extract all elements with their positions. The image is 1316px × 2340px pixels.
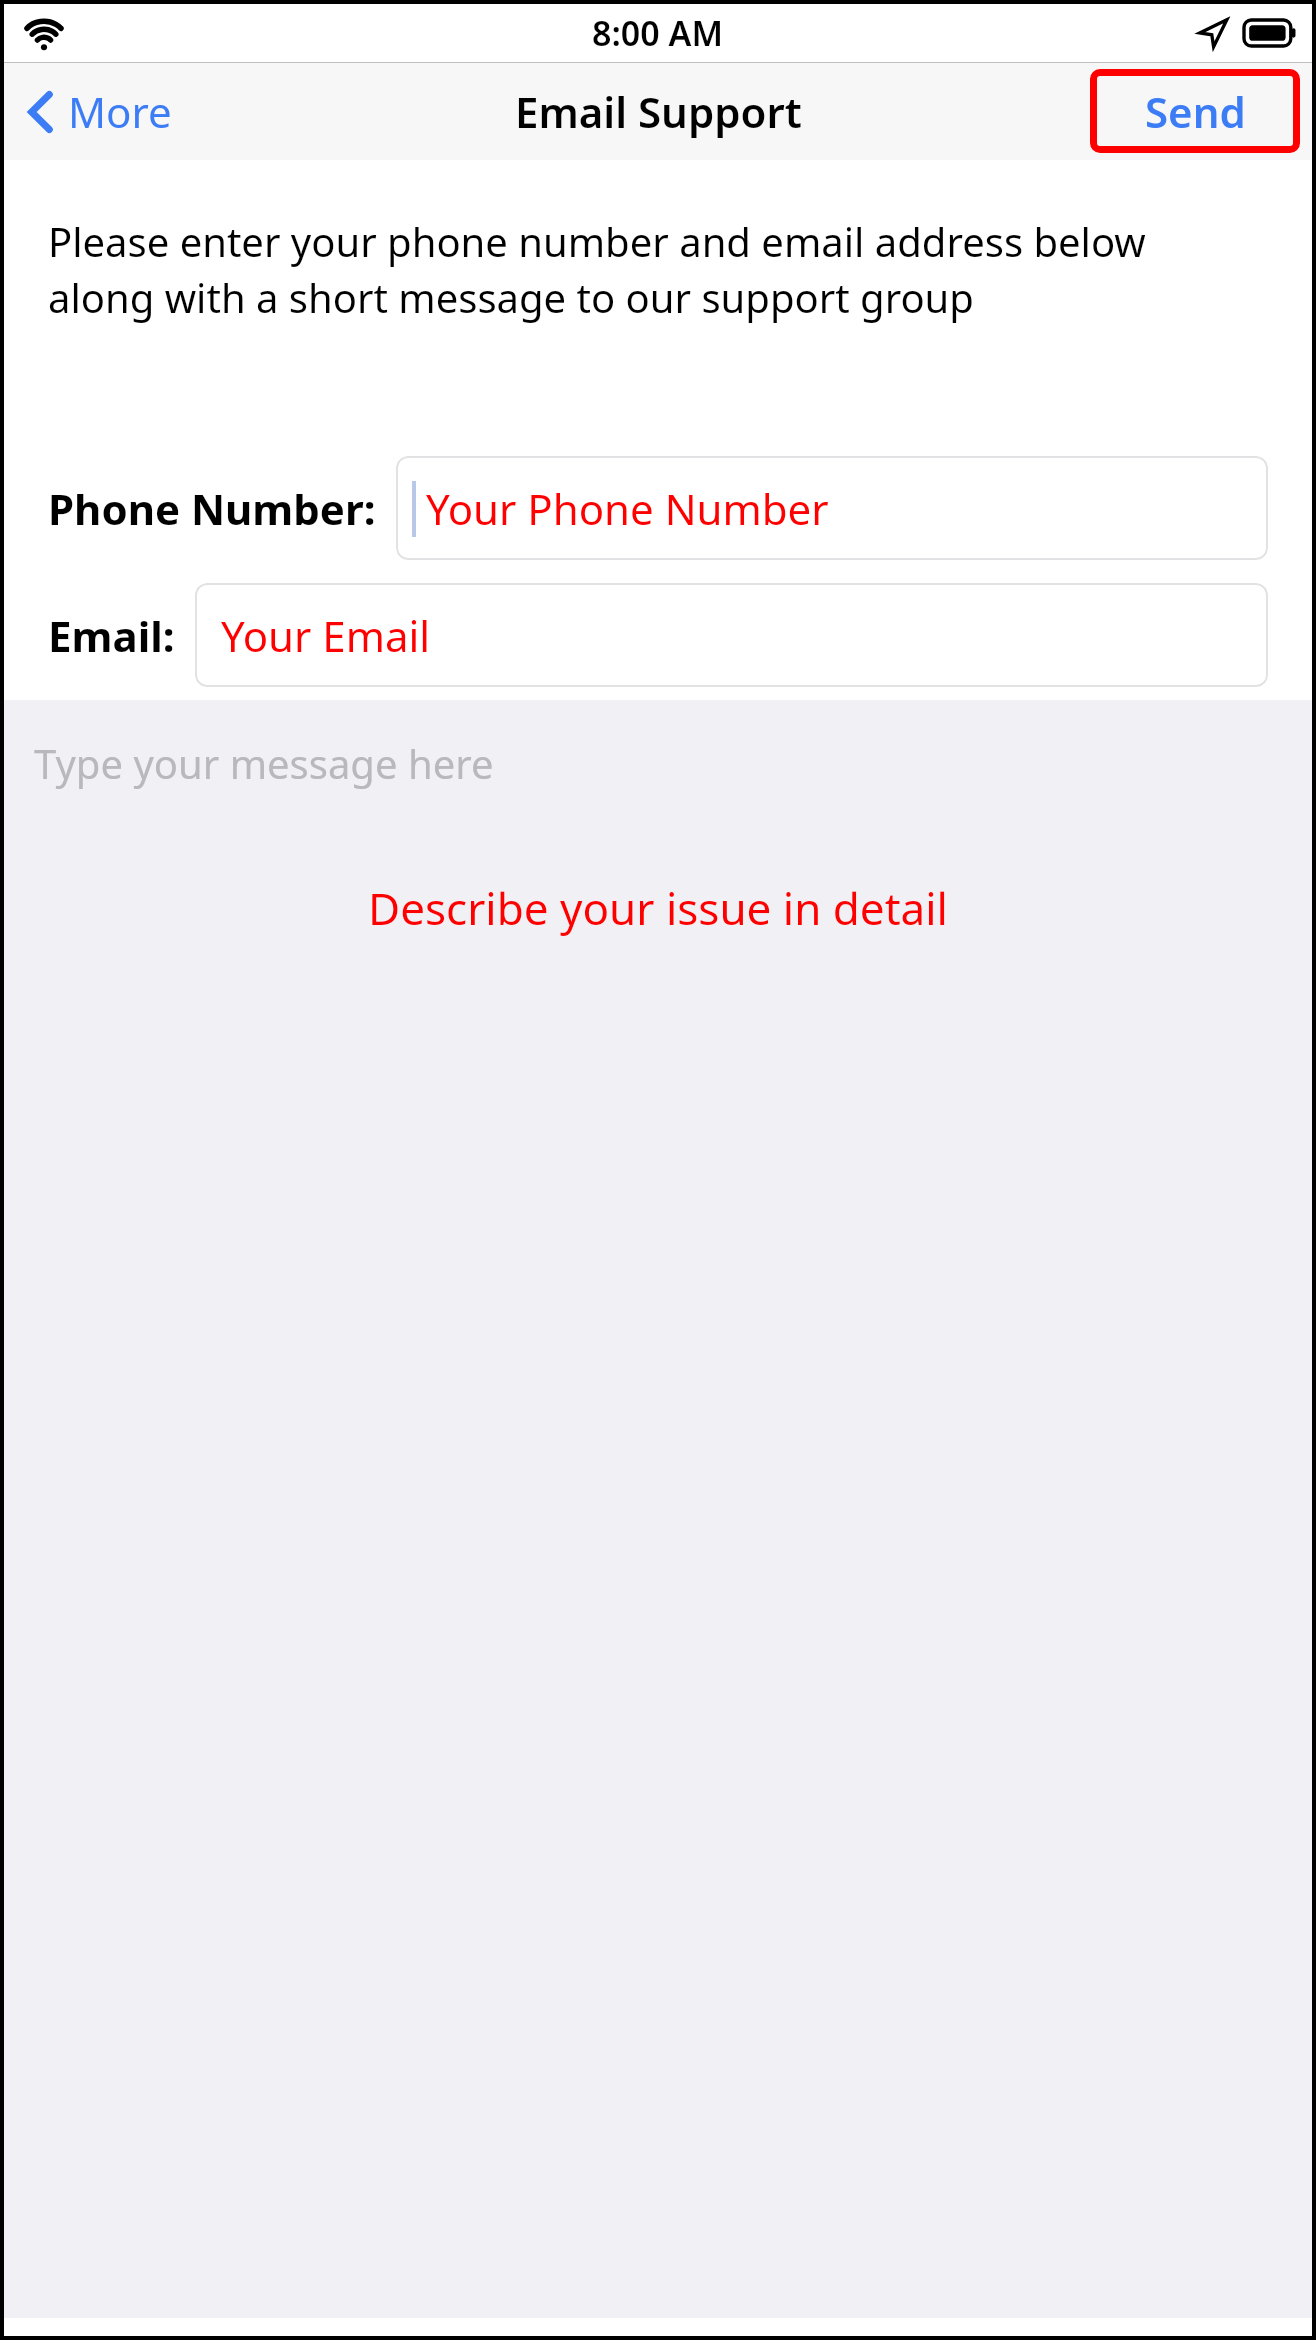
staticText: Your Email xyxy=(221,607,431,664)
staticText: Email: xyxy=(48,607,175,664)
staticText: Please enter your phone number and email… xyxy=(48,214,1240,325)
staticText: More xyxy=(68,83,172,140)
button[interactable]: Your Email xyxy=(195,583,1268,687)
button[interactable]: More xyxy=(22,75,178,148)
staticText: Email Support xyxy=(515,83,802,140)
button[interactable]: Type your message here xyxy=(4,700,1312,2318)
button[interactable]: Your Phone Number xyxy=(396,456,1268,560)
staticText: Describe your issue in detail xyxy=(368,878,948,938)
staticText: 8:00 AM xyxy=(592,10,724,56)
staticText: Your Phone Number xyxy=(426,480,829,537)
staticText: Type your message here xyxy=(34,736,494,790)
button[interactable]: Send xyxy=(1090,69,1300,153)
staticText: Phone Number: xyxy=(48,480,376,537)
staticText: Send xyxy=(1145,83,1246,140)
